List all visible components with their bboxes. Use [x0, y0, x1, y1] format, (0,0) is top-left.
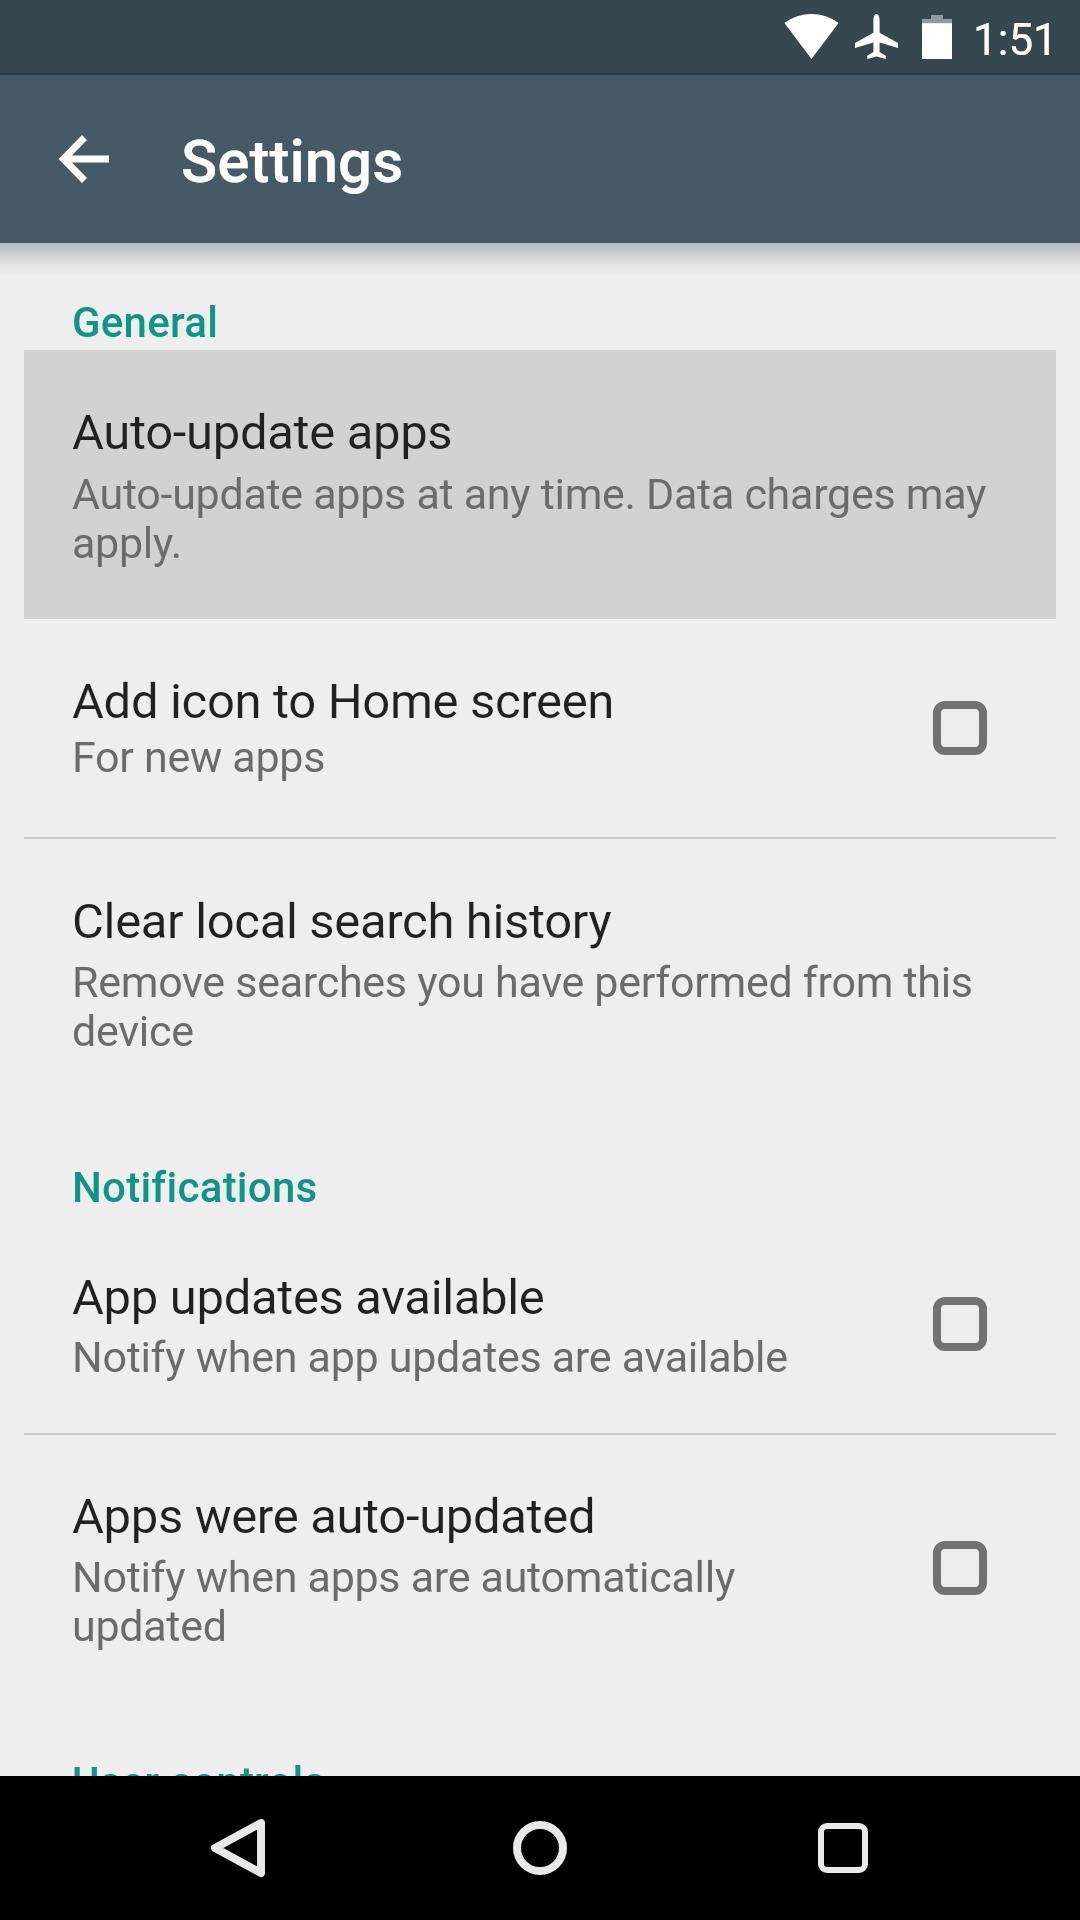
staticText: Remove searches you have performed from … — [72, 957, 1032, 1056]
staticText: Notifications — [72, 1163, 318, 1212]
staticText: User controls — [72, 1758, 326, 1807]
staticText: Notify when app updates are available — [72, 1332, 788, 1382]
staticText: Clear local search history — [72, 893, 612, 950]
staticText: Add icon to Home screen — [72, 673, 615, 730]
staticText: Settings — [181, 126, 404, 196]
staticText: For new apps — [72, 732, 326, 782]
staticText: Notify when apps are automatically updat… — [72, 1552, 899, 1651]
button[interactable]: Recent apps — [778, 1783, 908, 1913]
staticText: Auto-update apps at any time. Data charg… — [72, 469, 1008, 568]
button[interactable]: Clear local search history — [0, 839, 1080, 1056]
staticText: General — [72, 298, 219, 347]
button[interactable]: Navigate up — [36, 111, 132, 207]
button[interactable]: Add icon to Home screen — [0, 619, 1080, 837]
button[interactable]: Auto-update apps — [24, 350, 1056, 619]
staticText: Auto-update apps — [72, 404, 453, 461]
staticText: Apps were auto-updated — [72, 1488, 596, 1545]
staticText: App updates available — [72, 1269, 545, 1326]
button[interactable]: Apps were auto-updated — [0, 1435, 1080, 1651]
button[interactable]: Back — [173, 1783, 303, 1913]
button[interactable]: App updates available — [0, 1269, 1080, 1433]
staticText: 1:51 — [973, 14, 1058, 66]
button[interactable]: Home — [475, 1783, 605, 1913]
